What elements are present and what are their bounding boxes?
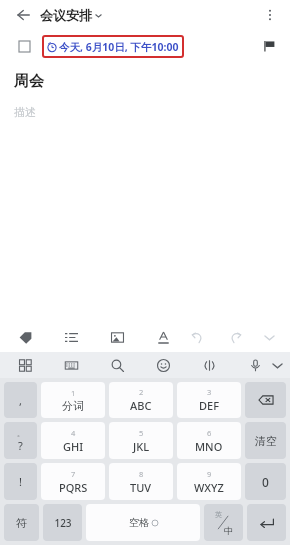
button[interactable]: 6 <box>177 422 241 459</box>
staticText: 9 <box>207 469 212 479</box>
staticText: ! <box>19 474 22 489</box>
button[interactable]: Hide keyboard <box>266 354 288 376</box>
staticText: DEF <box>199 398 219 413</box>
button[interactable]: 7 <box>41 463 105 500</box>
button[interactable]: 1 <box>41 382 105 418</box>
button[interactable]: 今天, 6月10日, 下午10:00 <box>42 35 184 58</box>
staticText: GHI <box>63 439 84 454</box>
staticText: 1 <box>71 388 76 398</box>
button[interactable]: 符 <box>4 504 39 541</box>
button[interactable]: Tag <box>14 326 36 348</box>
button[interactable]: 。 <box>4 422 37 459</box>
button[interactable]: Back <box>10 2 36 28</box>
button[interactable]: Backspace <box>245 382 286 418</box>
button[interactable]: List <box>60 326 82 348</box>
staticText: 5 <box>139 428 144 438</box>
button[interactable]: Emoji <box>152 354 174 376</box>
staticText: 周会 <box>14 72 44 91</box>
button[interactable]: ! <box>4 463 37 500</box>
button[interactable]: Voice input <box>244 354 266 376</box>
staticText: 符 <box>16 516 27 530</box>
staticText: 分词 <box>62 399 84 413</box>
button[interactable]: Flag <box>258 35 280 57</box>
button[interactable]: 3 <box>177 382 241 418</box>
staticText: ? <box>18 438 23 453</box>
button[interactable]: 空格 <box>86 504 200 541</box>
staticText: 8 <box>139 469 144 479</box>
button[interactable]: Apps <box>14 354 36 376</box>
button[interactable]: Image <box>106 326 128 348</box>
button[interactable]: Undo <box>186 326 208 348</box>
button[interactable]: Collapse <box>258 326 280 348</box>
button[interactable]: Keyboard layout <box>60 354 82 376</box>
staticText: MNO <box>195 439 223 454</box>
button[interactable]: More options <box>258 3 282 27</box>
button[interactable]: 123 <box>43 504 82 541</box>
button[interactable]: Search <box>106 354 128 376</box>
staticText: 2 <box>139 387 144 397</box>
staticText: , <box>19 393 22 408</box>
staticText: 今天, 6月10日, 下午10:00 <box>59 40 179 54</box>
staticText: ABC <box>130 398 152 413</box>
staticText: 英 <box>215 510 222 519</box>
button[interactable]: Mark complete <box>13 35 35 57</box>
staticText: 描述 <box>14 105 36 119</box>
button[interactable]: Enter <box>247 504 286 541</box>
button[interactable]: , <box>4 382 37 418</box>
staticText: 中 <box>224 525 233 536</box>
button[interactable]: Format text <box>152 326 174 348</box>
staticText: 清空 <box>255 434 277 448</box>
staticText: 3 <box>207 387 212 397</box>
staticText: JKL <box>133 439 150 454</box>
button[interactable]: 9 <box>177 463 241 500</box>
button[interactable]: Redo <box>224 326 246 348</box>
staticText: TUV <box>130 480 152 495</box>
button[interactable]: 会议安排 <box>38 5 105 25</box>
button[interactable]: 4 <box>41 422 105 459</box>
button[interactable]: 8 <box>109 463 173 500</box>
button[interactable]: Switch language <box>204 504 243 541</box>
staticText: 空格 <box>129 516 149 529</box>
staticText: 7 <box>71 469 76 479</box>
staticText: PQRS <box>59 480 88 495</box>
staticText: WXYZ <box>194 480 224 495</box>
staticText: 。 <box>17 429 24 438</box>
button[interactable]: 5 <box>109 422 173 459</box>
staticText: 123 <box>54 516 72 530</box>
button[interactable]: Translate <box>198 354 220 376</box>
staticText: 会议安排 <box>40 7 92 23</box>
button[interactable]: 清空 <box>245 422 286 459</box>
button[interactable]: 0 <box>245 463 286 500</box>
staticText: 6 <box>207 428 212 438</box>
staticText: 0 <box>262 474 269 490</box>
button[interactable]: 2 <box>109 382 173 418</box>
staticText: 4 <box>71 428 76 438</box>
